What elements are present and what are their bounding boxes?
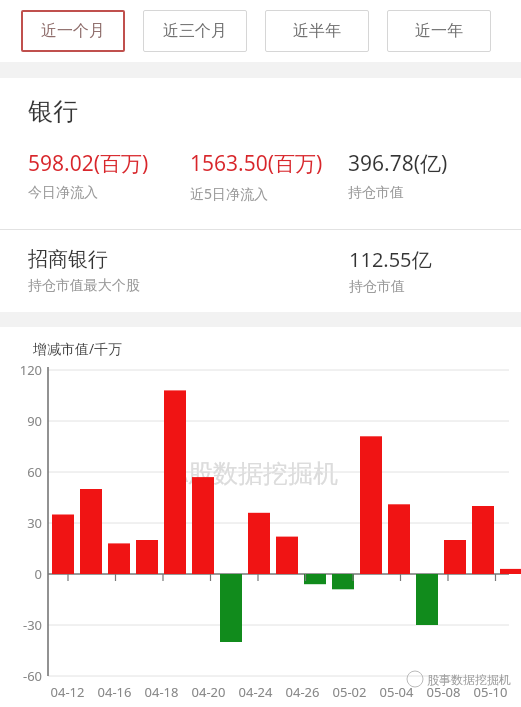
- staticText: 银行: [28, 96, 78, 127]
- button[interactable]: 近三个月: [143, 10, 247, 52]
- staticText: 股事数据挖掘机: [427, 672, 511, 687]
- staticText: 近半年: [293, 21, 341, 41]
- staticText: 近一个月: [41, 21, 105, 41]
- staticText: 04-12: [44, 683, 91, 701]
- staticText: 持仓市值: [348, 184, 404, 202]
- staticText: 112.55亿: [349, 246, 432, 273]
- staticText: 近一年: [415, 21, 463, 41]
- staticText: 近5日净流入: [190, 184, 269, 203]
- staticText: A股数据挖掘机: [172, 455, 338, 489]
- staticText: 598.02(百万): [28, 149, 149, 178]
- staticText: 04-16: [91, 683, 138, 701]
- staticText: -30: [2, 616, 42, 634]
- staticText: 持仓市值: [349, 278, 405, 296]
- staticText: 招商银行: [28, 247, 108, 272]
- staticText: 04-18: [138, 683, 185, 701]
- staticText: 今日净流入: [28, 184, 98, 202]
- staticText: 120: [2, 361, 42, 379]
- staticText: 05-10: [467, 683, 514, 701]
- staticText: 05-08: [420, 683, 467, 701]
- other: 公众号 股事数据挖掘机: [407, 671, 511, 687]
- staticText: 30: [2, 514, 42, 532]
- staticText: 04-26: [279, 683, 326, 701]
- staticText: 持仓市值最大个股: [28, 277, 140, 295]
- staticText: 90: [2, 412, 42, 430]
- button[interactable]: 近一个月: [21, 10, 125, 52]
- staticText: 增减市值/千万: [33, 339, 123, 358]
- staticText: 05-02: [326, 683, 373, 701]
- staticText: 04-24: [232, 683, 279, 701]
- staticText: 60: [2, 463, 42, 481]
- staticText: 1563.50(百万): [190, 149, 323, 178]
- staticText: 04-20: [185, 683, 232, 701]
- button[interactable]: 近半年: [265, 10, 369, 52]
- staticText: 396.78(亿): [348, 149, 448, 178]
- staticText: -60: [2, 667, 42, 685]
- staticText: 0: [2, 565, 42, 583]
- staticText: 05-04: [373, 683, 420, 701]
- staticText: 近三个月: [163, 21, 227, 41]
- button[interactable]: 近一年: [387, 10, 491, 52]
